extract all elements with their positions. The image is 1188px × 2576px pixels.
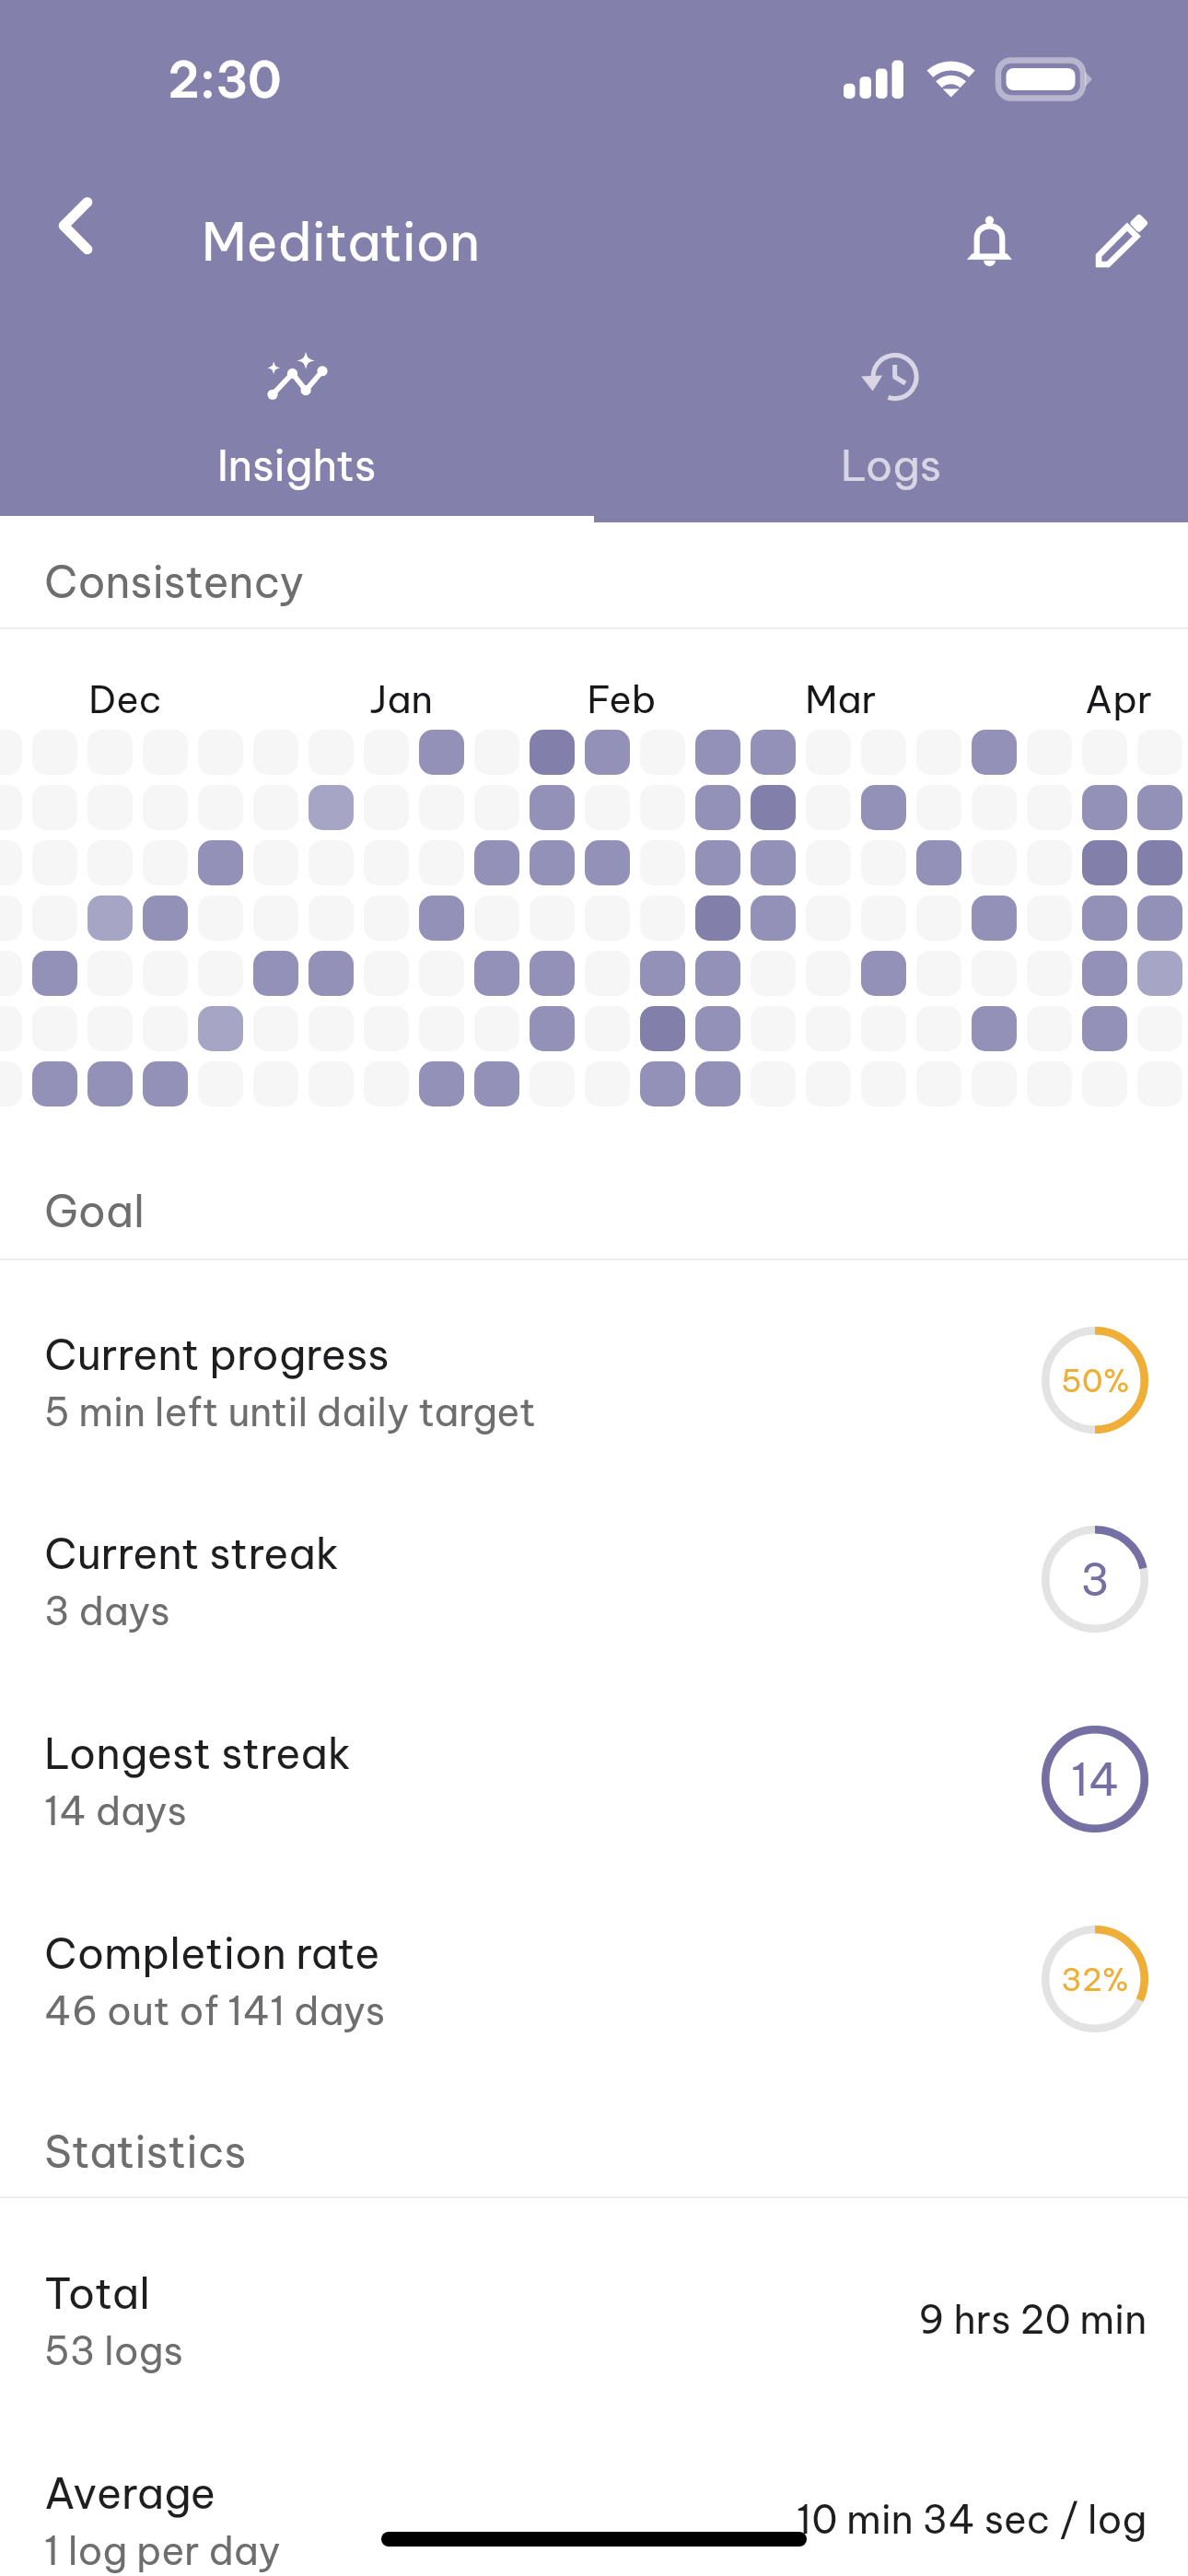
staticText: Average: [44, 2466, 216, 2520]
staticText: 9 hrs 20 min: [918, 2295, 1147, 2344]
button[interactable]: Edit: [1085, 204, 1159, 277]
staticText: Jan: [369, 675, 433, 723]
staticText: Statistics: [44, 2125, 247, 2179]
staticText: 14: [1071, 1751, 1120, 1808]
staticText: Logs: [841, 439, 942, 492]
button[interactable]: Total: [0, 2227, 1188, 2427]
staticText: 53 logs: [44, 2326, 183, 2375]
button[interactable]: Average: [0, 2427, 1188, 2576]
button[interactable]: Logs: [594, 322, 1188, 522]
staticText: 2:30: [168, 49, 282, 111]
staticText: 3 days: [44, 1587, 170, 1635]
staticText: Goal: [44, 1184, 145, 1238]
button[interactable]: Current streak: [0, 1487, 1188, 1687]
staticText: Total: [44, 2266, 150, 2320]
button[interactable]: Current progress: [0, 1288, 1188, 1488]
staticText: 5 min left until daily target: [44, 1388, 536, 1436]
staticText: 46 out of 141 days: [44, 1986, 386, 2035]
staticText: Feb: [587, 675, 657, 723]
staticText: Current streak: [44, 1527, 340, 1580]
staticText: 10 min 34 sec / log: [797, 2495, 1147, 2544]
staticText: Longest streak: [44, 1727, 352, 1780]
staticText: Consistency: [44, 555, 305, 609]
staticText: 1 log per day: [44, 2526, 281, 2575]
staticText: Completion rate: [44, 1926, 380, 1980]
button[interactable]: Back: [39, 189, 112, 263]
staticText: Current progress: [44, 1328, 390, 1381]
button[interactable]: Longest streak: [0, 1687, 1188, 1887]
staticText: Meditation: [202, 208, 481, 275]
staticText: 50%: [1061, 1361, 1130, 1400]
staticText: Mar: [805, 675, 877, 723]
staticText: 14 days: [44, 1786, 187, 1835]
staticText: Insights: [217, 439, 377, 492]
staticText: Apr: [1085, 675, 1152, 723]
staticText: 3: [1080, 1551, 1110, 1608]
button[interactable]: Completion rate: [0, 1887, 1188, 2087]
staticText: Dec: [88, 675, 162, 723]
staticText: 32%: [1061, 1960, 1129, 1999]
button[interactable]: Notifications: [952, 205, 1026, 278]
button[interactable]: Insights: [0, 322, 594, 522]
